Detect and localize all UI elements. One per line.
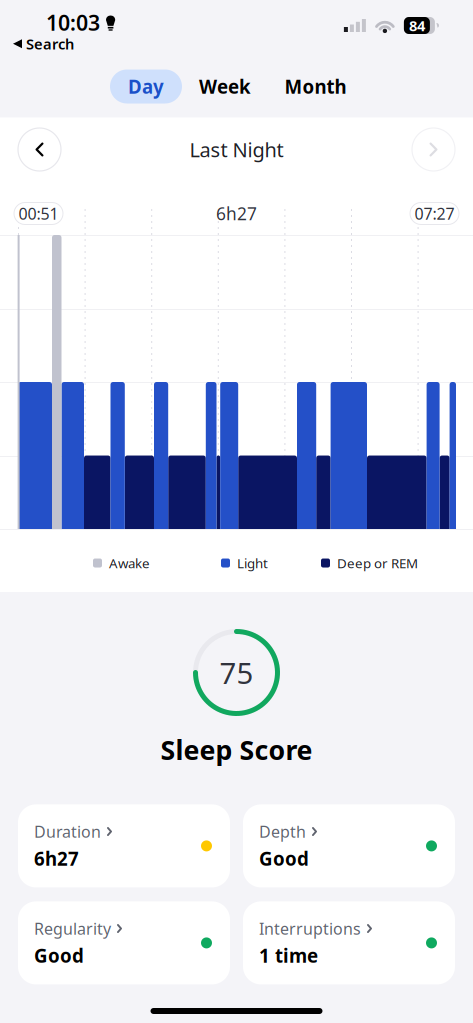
staticText: Awake <box>109 554 150 572</box>
staticText: Week <box>199 74 251 99</box>
staticText: Regularity <box>34 918 111 939</box>
staticText: Depth <box>259 821 306 842</box>
staticText: 84 <box>409 16 425 35</box>
staticText: Duration <box>34 821 101 842</box>
staticText: Sleep Score <box>160 732 312 767</box>
staticText: 1 time <box>259 943 318 968</box>
staticText: 00:51 <box>18 203 58 224</box>
staticText: 6h27 <box>216 202 257 225</box>
button[interactable]: Week <box>182 69 268 103</box>
staticText: 75 <box>219 653 253 692</box>
staticText: 10:03 <box>46 8 100 37</box>
button[interactable]: Month <box>268 69 363 103</box>
staticText: 6h27 <box>34 846 79 871</box>
button[interactable]: Depth <box>243 804 455 887</box>
staticText: 07:27 <box>414 203 454 224</box>
staticText: Light <box>237 554 268 572</box>
staticText: Good <box>259 846 309 871</box>
button[interactable]: Day <box>110 69 182 103</box>
staticText: Day <box>128 74 164 99</box>
button[interactable]: Previous night <box>18 128 61 171</box>
staticText: Deep or REM <box>337 554 418 572</box>
button[interactable]: Duration <box>18 804 230 887</box>
staticText: Search <box>26 34 74 53</box>
staticText: Last Night <box>189 136 283 163</box>
staticText: Interruptions <box>259 918 361 939</box>
staticText: Month <box>284 74 346 99</box>
button[interactable]: Interruptions <box>243 901 455 984</box>
button[interactable]: Regularity <box>18 901 230 984</box>
button[interactable]: Next night <box>412 128 455 171</box>
staticText: Good <box>34 943 84 968</box>
